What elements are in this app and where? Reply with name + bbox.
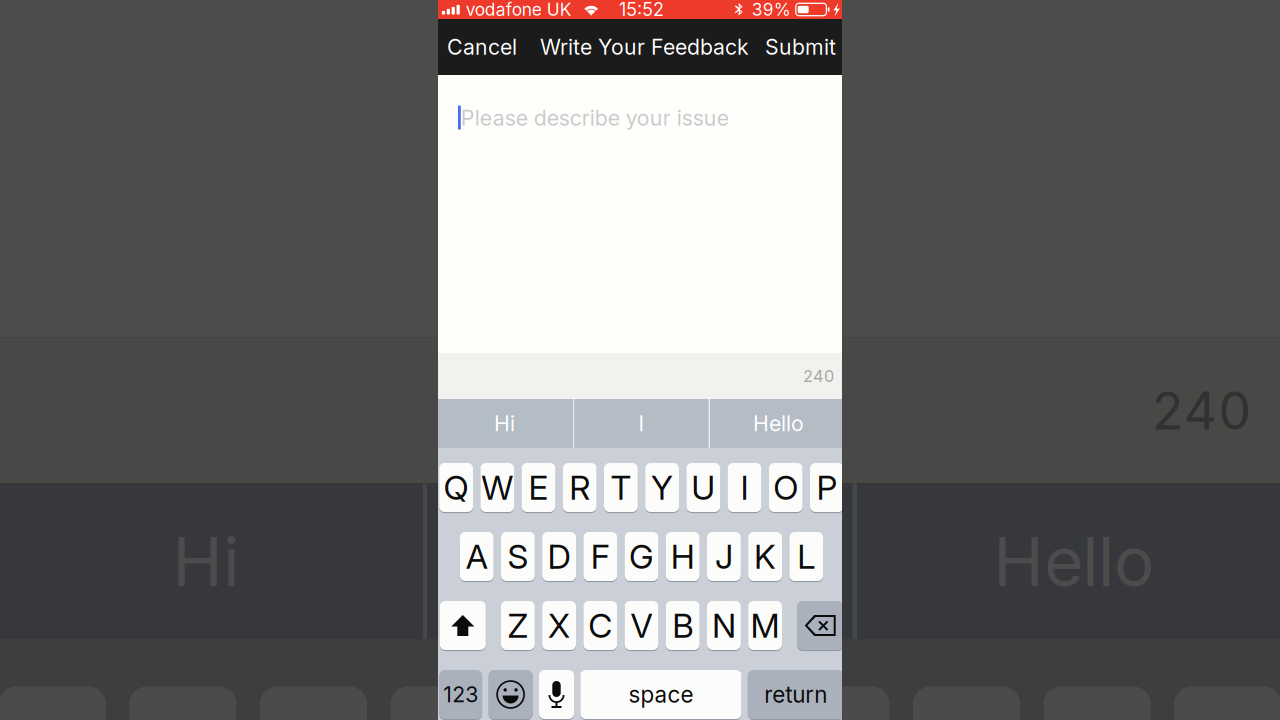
button[interactable]: G — [625, 532, 658, 581]
staticText: I — [638, 411, 644, 436]
button[interactable]: I — [726, 463, 760, 512]
button[interactable]: Cancel — [434, 19, 526, 75]
staticText: X — [548, 605, 570, 646]
button[interactable]: Z — [501, 601, 535, 650]
button[interactable]: M — [748, 601, 782, 650]
button[interactable]: X — [542, 601, 576, 650]
button[interactable]: 123 — [438, 670, 481, 719]
button[interactable]: return — [748, 670, 844, 719]
button[interactable]: Y — [645, 463, 679, 512]
button[interactable]: S — [501, 532, 535, 581]
staticText: X — [547, 605, 569, 646]
button[interactable]: Submit — [752, 19, 845, 75]
button[interactable]: Dictation — [537, 670, 572, 719]
staticText: S — [506, 536, 527, 577]
button[interactable]: T — [604, 463, 638, 512]
button[interactable]: Emoji keyboard — [487, 670, 531, 719]
button[interactable]: 123 — [439, 670, 482, 719]
button[interactable]: J — [705, 532, 739, 581]
button[interactable]: Y — [644, 463, 677, 512]
button[interactable]: X — [541, 601, 574, 650]
staticText: Please describe your issue — [461, 105, 729, 131]
button[interactable]: I — [573, 399, 707, 448]
button[interactable]: R — [561, 463, 595, 512]
button[interactable]: C — [583, 601, 617, 650]
button[interactable]: A — [460, 532, 494, 581]
button[interactable]: I — [574, 399, 709, 448]
button[interactable]: O — [767, 463, 801, 512]
staticText: space — [627, 681, 692, 708]
button[interactable]: L — [788, 532, 822, 581]
button[interactable]: Hi — [436, 399, 573, 448]
button[interactable]: space — [580, 670, 741, 719]
staticText: Please describe your issue — [459, 105, 727, 131]
button[interactable]: U — [686, 463, 720, 512]
button[interactable]: R — [563, 463, 597, 512]
button[interactable]: B — [666, 601, 700, 650]
button[interactable]: S — [499, 532, 533, 581]
staticText: 123 — [443, 682, 478, 707]
button[interactable]: O — [769, 463, 803, 512]
button[interactable]: M — [747, 601, 780, 650]
button[interactable]: H — [664, 532, 698, 581]
button[interactable]: E — [520, 463, 554, 512]
button[interactable]: Submit — [754, 19, 847, 75]
button[interactable]: F — [582, 532, 616, 581]
button[interactable]: P — [808, 463, 842, 512]
staticText: Write Your Feedback — [538, 34, 747, 60]
button[interactable]: W — [479, 463, 513, 512]
button[interactable]: I — [728, 463, 761, 512]
button[interactable]: Z — [499, 601, 533, 650]
button[interactable]: C — [582, 601, 616, 650]
button[interactable]: K — [748, 532, 782, 581]
button[interactable]: D — [541, 532, 574, 581]
button[interactable]: T — [602, 463, 636, 512]
button[interactable]: Cancel — [436, 19, 528, 75]
button[interactable]: Hello — [708, 399, 845, 448]
button[interactable]: G — [623, 532, 657, 581]
button[interactable]: Dictation — [539, 670, 574, 719]
button[interactable]: Delete — [796, 601, 842, 650]
button[interactable]: U — [685, 463, 719, 512]
staticText: E — [528, 467, 548, 508]
staticText: E — [527, 467, 547, 508]
button[interactable]: W — [480, 463, 514, 512]
button[interactable]: V — [625, 601, 658, 650]
staticText: U — [691, 467, 715, 508]
staticText: F — [591, 536, 610, 577]
button[interactable]: Q — [438, 463, 471, 512]
button[interactable]: Q — [439, 463, 473, 512]
button[interactable]: A — [458, 532, 492, 581]
staticText: Z — [506, 605, 527, 646]
button[interactable]: N — [705, 601, 739, 650]
staticText: A — [466, 536, 488, 577]
button[interactable]: E — [522, 463, 555, 512]
button[interactable]: K — [747, 532, 780, 581]
staticText: 123 — [442, 682, 477, 707]
button[interactable]: Hi — [434, 399, 571, 448]
staticText: Z — [507, 605, 528, 646]
staticText: S — [507, 536, 528, 577]
button[interactable]: D — [542, 532, 576, 581]
button[interactable]: Hello — [710, 399, 847, 448]
button[interactable]: Delete — [797, 601, 843, 650]
button[interactable]: B — [664, 601, 698, 650]
button[interactable]: Emoji keyboard — [489, 670, 533, 719]
staticText: R — [569, 467, 590, 508]
button[interactable]: L — [789, 532, 823, 581]
button[interactable]: P — [810, 463, 844, 512]
staticText: P — [815, 467, 836, 508]
staticText: vodafone UK — [466, 0, 572, 20]
staticText: A — [464, 536, 486, 577]
button[interactable]: N — [707, 601, 741, 650]
button[interactable]: V — [623, 601, 657, 650]
button[interactable]: F — [583, 532, 617, 581]
button[interactable]: Shift — [438, 601, 484, 650]
button[interactable]: H — [666, 532, 700, 581]
staticText: space — [628, 681, 693, 708]
button[interactable]: space — [579, 670, 740, 719]
staticText: Hi — [492, 411, 513, 436]
button[interactable]: J — [707, 532, 741, 581]
button[interactable]: return — [746, 670, 842, 719]
button[interactable]: Shift — [440, 601, 486, 650]
